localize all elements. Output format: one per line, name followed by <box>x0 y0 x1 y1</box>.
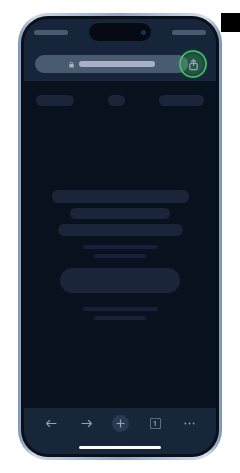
button[interactable]: Back <box>36 408 66 438</box>
button[interactable]: New tab <box>105 408 135 438</box>
button[interactable]: More options <box>174 408 204 438</box>
button[interactable] <box>159 95 204 106</box>
staticText: 1 <box>153 419 158 429</box>
button[interactable]: Share <box>177 48 209 80</box>
button[interactable] <box>36 95 74 106</box>
button[interactable] <box>108 95 125 106</box>
button[interactable] <box>35 55 188 73</box>
button[interactable]: Forward <box>71 408 101 438</box>
button[interactable]: Tabs <box>140 408 170 438</box>
